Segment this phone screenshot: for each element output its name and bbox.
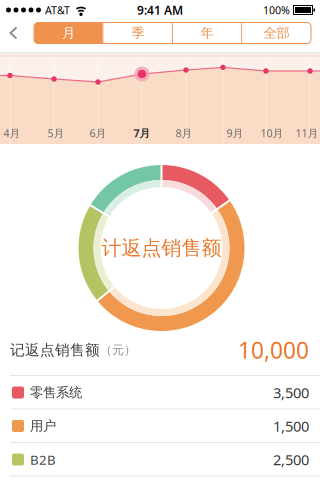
staticText: 2,500 (273, 450, 309, 469)
staticText: 7月 (133, 126, 150, 140)
staticText: 1,500 (273, 416, 309, 436)
staticText: 记返点销售额 (10, 341, 100, 359)
staticText: 6月 (89, 126, 106, 140)
staticText: 零售系统 (30, 384, 82, 401)
staticText: 9:41 AM (137, 2, 183, 18)
staticText: 8月 (175, 126, 192, 140)
staticText: 3,500 (273, 383, 309, 402)
staticText: （元） (100, 343, 136, 357)
button[interactable]: 年 (173, 22, 241, 43)
button[interactable]: 全部 (242, 22, 311, 43)
staticText: 计返点销售额 (101, 236, 221, 260)
button[interactable]: 用户 (0, 409, 320, 443)
button[interactable]: B2B (0, 443, 320, 476)
staticText: 季 (131, 25, 144, 41)
staticText: 10,000 (238, 335, 309, 365)
button[interactable]: 月 (34, 22, 103, 43)
button[interactable]: 季 (104, 22, 172, 43)
button[interactable] (3, 20, 25, 45)
staticText: 用户 (30, 418, 56, 434)
staticText: B2B (30, 451, 56, 468)
staticText: 全部 (263, 25, 289, 41)
staticText: 月 (62, 25, 75, 41)
staticText: 10月 (260, 126, 283, 140)
staticText: 11月 (295, 126, 318, 140)
staticText: AT&T (45, 3, 70, 17)
staticText: 4月 (3, 126, 20, 140)
staticText: 5月 (47, 126, 64, 140)
staticText: 100% (263, 3, 290, 17)
staticText: 9月 (226, 126, 243, 140)
button[interactable]: 零售系统 (0, 376, 320, 409)
staticText: 年 (201, 25, 214, 41)
